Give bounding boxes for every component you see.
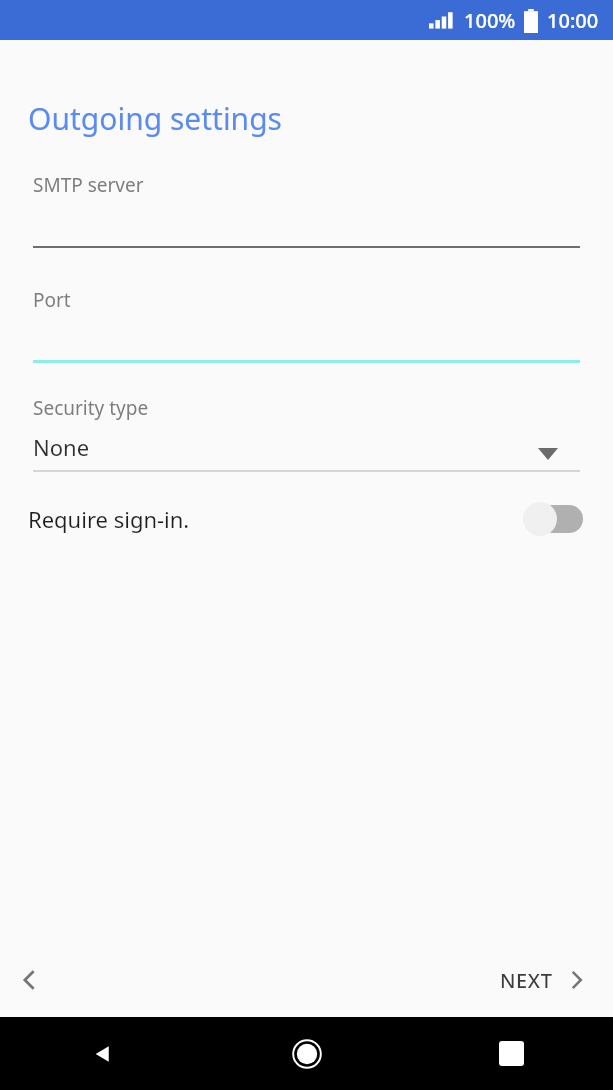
- staticText: 100%: [464, 7, 516, 34]
- staticText: Port: [33, 287, 71, 313]
- button[interactable]: Home: [205, 1017, 409, 1090]
- button[interactable]: Previous: [0, 948, 58, 1012]
- button[interactable]: SMTP server: [0, 170, 613, 248]
- button[interactable]: Require sign-in.: [0, 489, 613, 549]
- button[interactable]: Security type: [0, 393, 613, 472]
- staticText: SMTP server: [33, 172, 144, 198]
- staticText: 10:00: [547, 7, 599, 34]
- button[interactable]: NEXT: [490, 948, 599, 1012]
- button[interactable]: Recents: [409, 1017, 613, 1090]
- button[interactable]: Back: [0, 1017, 205, 1090]
- button[interactable]: Port: [0, 285, 613, 363]
- staticText: Require sign-in.: [28, 504, 190, 534]
- staticText: Security type: [33, 395, 149, 421]
- staticText: Outgoing settings: [28, 98, 282, 139]
- staticText: None: [33, 432, 90, 462]
- staticText: NEXT: [500, 967, 553, 994]
